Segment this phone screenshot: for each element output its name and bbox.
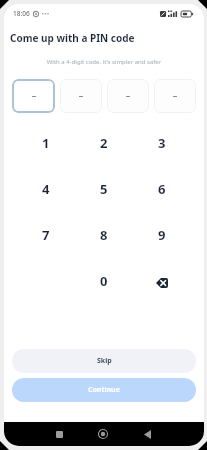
button[interactable]: 5 (75, 166, 133, 212)
button[interactable] (107, 79, 149, 113)
staticText: 7 (42, 226, 50, 244)
button[interactable] (154, 79, 196, 113)
button[interactable]: Home (81, 422, 125, 446)
button[interactable]: Skip (12, 349, 196, 373)
button[interactable]: 3 (133, 120, 191, 166)
staticText: 18:06 (13, 9, 30, 18)
staticText: 3 (158, 134, 166, 152)
staticText: Come up with a PIN code (10, 31, 135, 45)
staticText: 8 (100, 226, 108, 244)
button[interactable]: Recents (37, 422, 81, 446)
button[interactable]: 4 (17, 166, 75, 212)
other: Backspace (156, 278, 168, 288)
staticText: 1 (42, 134, 50, 152)
button[interactable] (12, 79, 55, 113)
button[interactable]: 1 (17, 120, 75, 166)
button[interactable]: 9 (133, 212, 191, 258)
button[interactable]: 6 (133, 166, 191, 212)
button[interactable]: Backspace (133, 258, 191, 304)
button[interactable]: 0 (75, 258, 133, 304)
staticText: 9 (158, 226, 166, 244)
button[interactable]: Back (125, 422, 169, 446)
button[interactable]: 2 (75, 120, 133, 166)
staticText: With a 4-digit code, it's simpler and sa… (4, 58, 204, 66)
button[interactable]: 7 (17, 212, 75, 258)
button[interactable] (60, 79, 102, 113)
staticText: 2 (100, 134, 108, 152)
staticText: 0 (100, 272, 108, 290)
button[interactable]: Continue (12, 378, 196, 402)
staticText: 5 (100, 180, 108, 198)
button[interactable]: 8 (75, 212, 133, 258)
staticText: Skip (97, 356, 112, 366)
staticText: 6 (158, 180, 166, 198)
staticText: 4 (42, 180, 50, 198)
staticText: Continue (88, 385, 120, 395)
